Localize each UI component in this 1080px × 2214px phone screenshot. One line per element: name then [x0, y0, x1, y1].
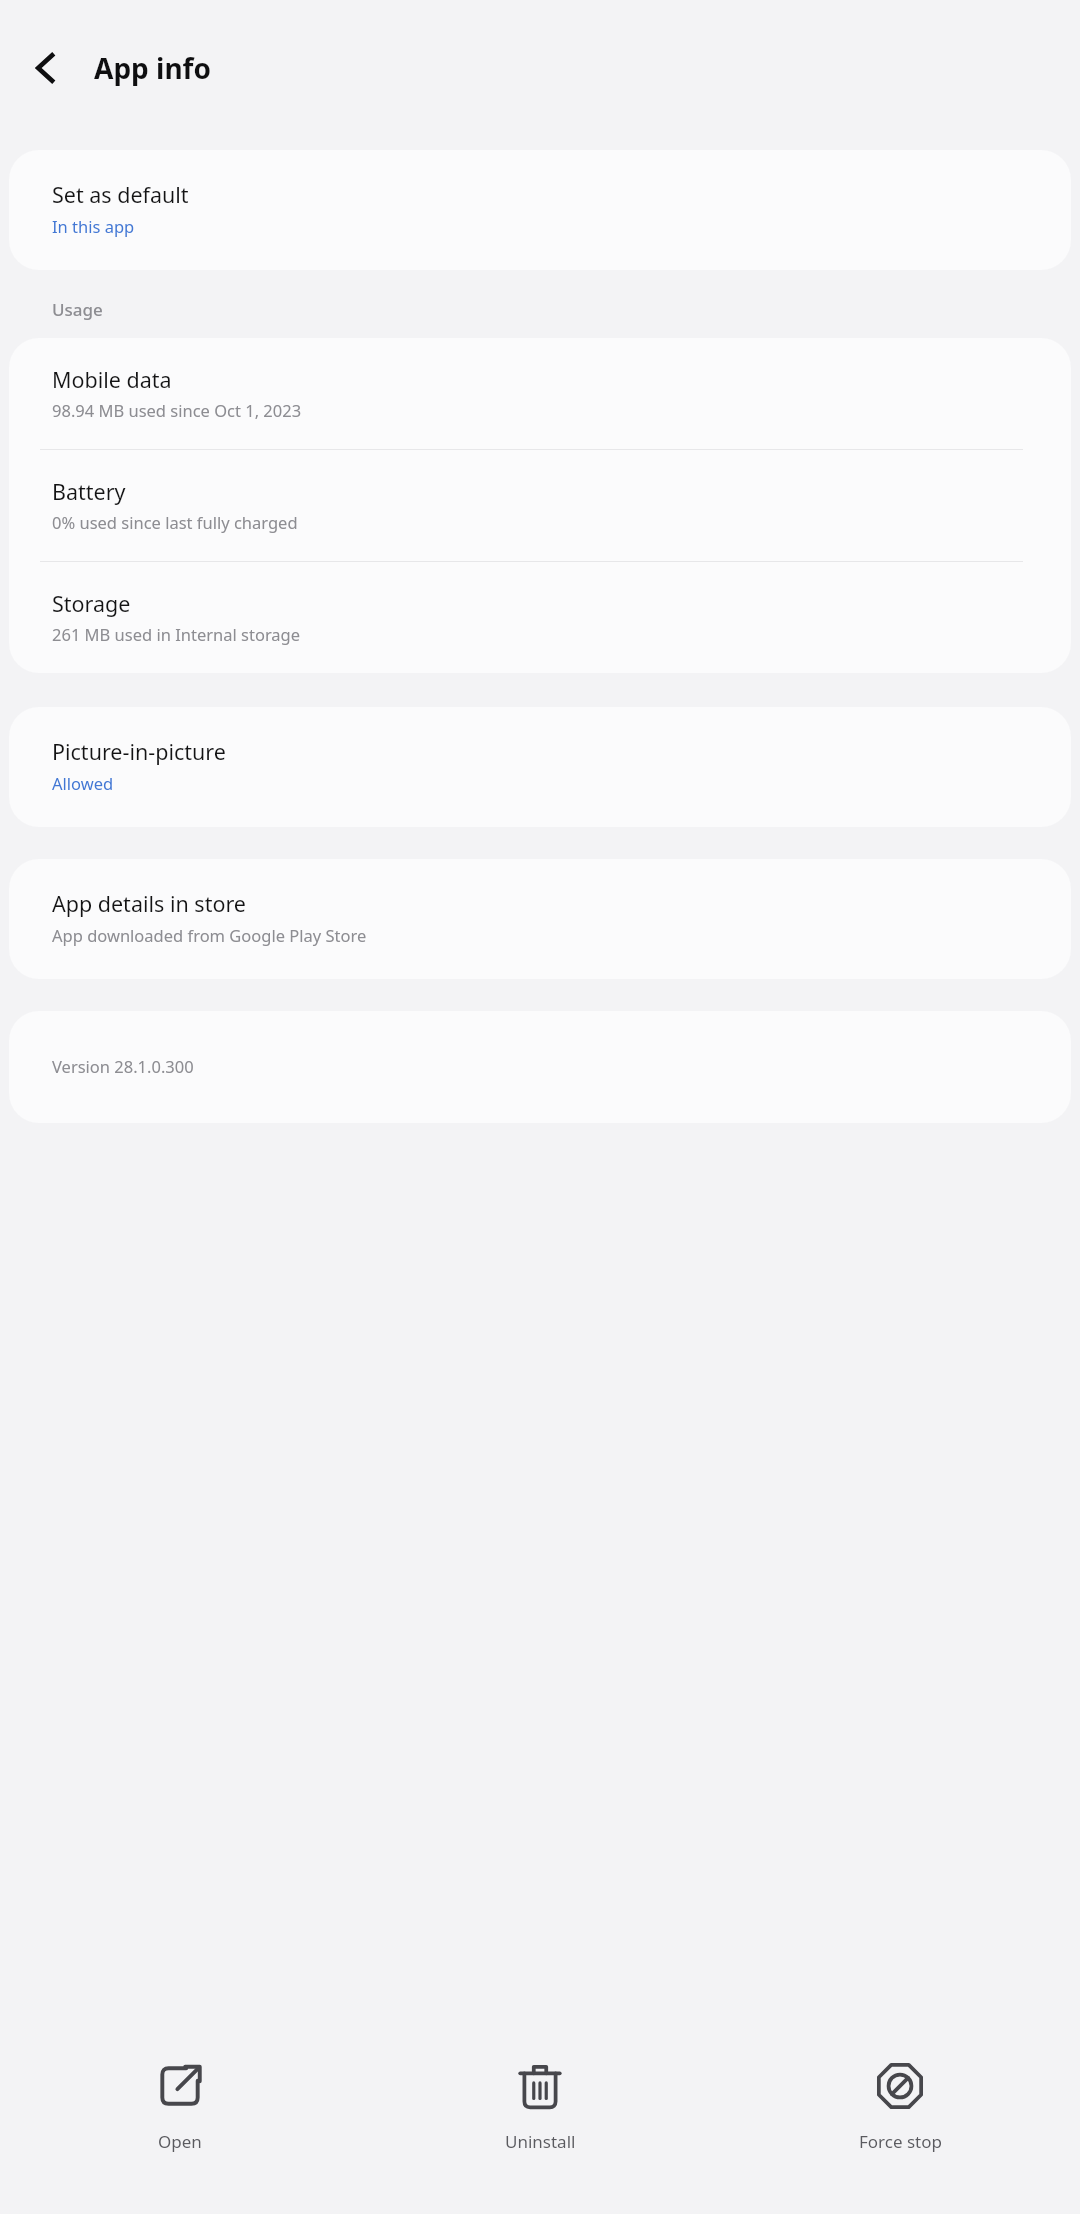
staticText: Set as default	[52, 180, 189, 209]
button[interactable]: Set as default	[9, 150, 1071, 270]
button[interactable]: Mobile data	[9, 338, 1071, 449]
staticText: Force stop	[859, 2130, 942, 2153]
button[interactable]: Picture-in-picture	[9, 707, 1071, 827]
staticText: Version 28.1.0.300	[52, 1055, 194, 1077]
staticText: Storage	[52, 589, 131, 618]
staticText: App info	[94, 49, 211, 87]
button[interactable]: Open	[0, 2034, 360, 2214]
staticText: Open	[158, 2130, 202, 2153]
staticText: Allowed	[52, 772, 114, 794]
staticText: Picture-in-picture	[52, 737, 226, 766]
staticText: App downloaded from Google Play Store	[52, 924, 367, 946]
button[interactable]: Uninstall	[360, 2034, 720, 2214]
staticText: 261 MB used in Internal storage	[52, 623, 301, 645]
button[interactable]: Version 28.1.0.300	[9, 1011, 1071, 1123]
button[interactable]: Force stop	[720, 2034, 1080, 2214]
staticText: In this app	[52, 215, 135, 237]
staticText: Battery	[52, 477, 126, 506]
staticText: App details in store	[52, 889, 246, 918]
staticText: Mobile data	[52, 365, 172, 394]
button[interactable]: Storage	[9, 562, 1071, 673]
staticText: Uninstall	[505, 2130, 576, 2153]
button[interactable]: Back	[12, 33, 82, 103]
staticText: 0% used since last fully charged	[52, 511, 298, 533]
button[interactable]: Battery	[9, 450, 1071, 561]
staticText: 98.94 MB used since Oct 1, 2023	[52, 399, 302, 421]
button[interactable]: App details in store	[9, 859, 1071, 979]
staticText: Usage	[52, 298, 103, 321]
